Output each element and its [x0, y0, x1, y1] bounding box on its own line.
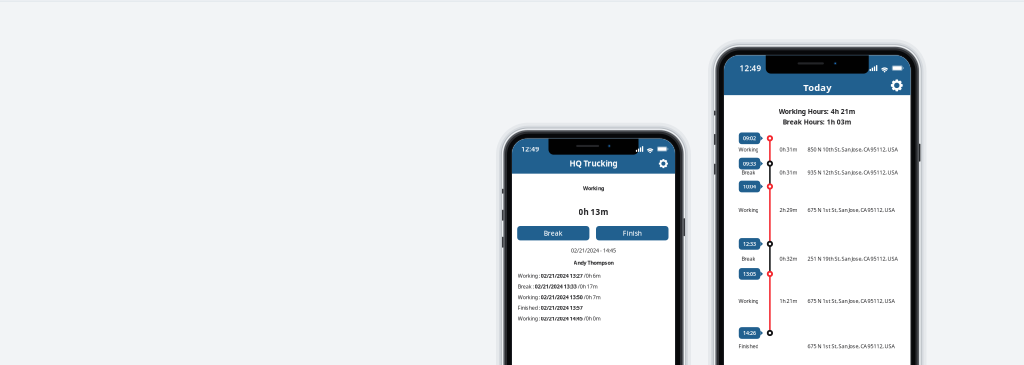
staticText: 0h 31m — [779, 146, 797, 153]
button[interactable]: HQ Trucking — [548, 157, 638, 169]
staticText: 02/21/2024 14:45 — [541, 315, 583, 322]
staticText: 675 N 1st St, San Jose, CA 95112, USA — [807, 343, 894, 350]
button[interactable]: Settings — [891, 79, 903, 91]
button[interactable]: Finish — [596, 226, 668, 240]
button[interactable]: Settings — [659, 159, 668, 168]
staticText: 12:33 — [743, 240, 756, 247]
button[interactable]: Today — [782, 81, 852, 94]
staticText: Working — [738, 146, 758, 153]
staticText: 12:49 — [521, 145, 539, 153]
staticText: 935 N 12th St, San Jose, CA 95112, USA — [807, 169, 897, 176]
staticText: 251 N 19th St, San Jose, CA 95112, USA — [807, 255, 897, 262]
staticText: Break : — [518, 283, 535, 290]
staticText: 14:26 — [743, 329, 756, 337]
staticText: 1h 21m — [779, 297, 797, 305]
staticText: 09:33 — [743, 160, 756, 167]
staticText: Break — [741, 255, 755, 262]
staticText: 02/21/2024 13:50 — [541, 294, 583, 301]
staticText: 02/21/2024 13:33 — [535, 283, 577, 290]
staticText: Andy Thompson — [573, 259, 613, 266]
staticText: Working Hours: 4h 21m — [779, 107, 856, 116]
staticText: Break — [544, 229, 563, 238]
button[interactable]: Break — [517, 226, 589, 240]
staticText: 0h 32m — [779, 255, 797, 262]
staticText: 12:49 — [739, 63, 761, 73]
staticText: 02/21/2024 - 14:45 — [571, 247, 616, 254]
staticText: Break — [741, 169, 755, 176]
staticText: 02/21/2024 13:57 — [541, 304, 583, 311]
staticText: Working — [738, 206, 758, 213]
staticText: Break Hours: 1h 03m — [783, 117, 852, 126]
staticText: 0h 13m — [578, 206, 608, 217]
staticText: 850 N 10th St, San Jose, CA 95112, USA — [807, 146, 897, 153]
staticText: /0h 0m — [583, 315, 601, 322]
staticText: Working : — [518, 272, 541, 279]
staticText: 675 N 1st St, San Jose, CA 95112, USA — [807, 206, 894, 213]
staticText: 0h 31m — [779, 169, 797, 176]
staticText: 09:02 — [743, 135, 756, 142]
staticText: /0h 7m — [583, 294, 601, 301]
staticText: 02/21/2024 13:27 — [541, 272, 583, 279]
staticText: Working : — [518, 315, 541, 322]
staticText: /0h 6m — [583, 272, 601, 279]
staticText: Finished — [738, 343, 758, 350]
staticText: Working — [738, 297, 758, 305]
staticText: 675 N 1st St, San Jose, CA 95112, USA — [807, 297, 894, 305]
staticText: Working — [583, 185, 604, 192]
staticText: HQ Trucking — [569, 158, 617, 169]
staticText: 10:04 — [743, 183, 756, 190]
staticText: 13:05 — [743, 270, 756, 277]
staticText: /0h 17m — [577, 283, 598, 290]
staticText: 2h 29m — [779, 206, 797, 213]
staticText: Finished : — [518, 304, 541, 311]
staticText: Today — [803, 81, 831, 93]
staticText: Finish — [623, 229, 642, 238]
staticText: Working : — [518, 294, 541, 301]
